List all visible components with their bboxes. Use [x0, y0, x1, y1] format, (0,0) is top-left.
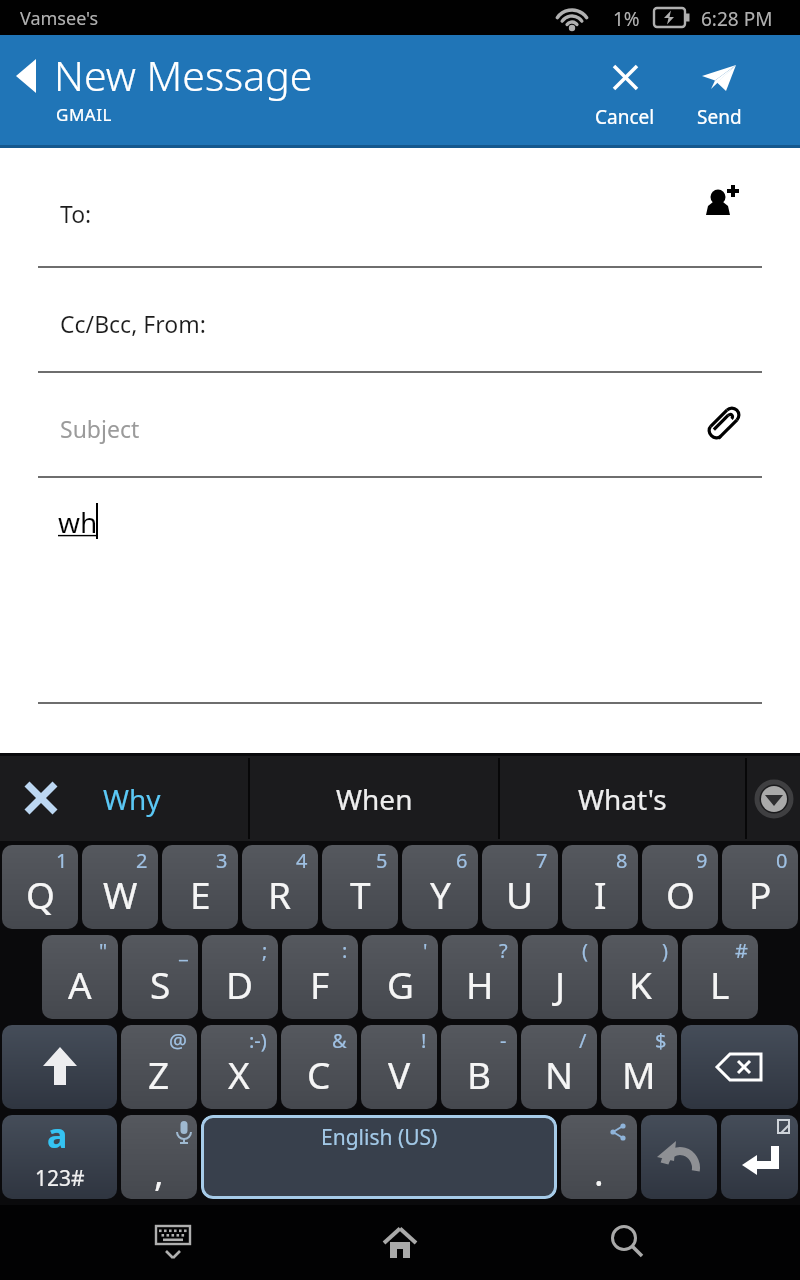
- button[interactable]: G: [362, 935, 438, 1019]
- button[interactable]: [681, 1025, 798, 1109]
- button[interactable]: U: [482, 845, 558, 929]
- staticText: Subject: [60, 413, 140, 444]
- staticText: ": [99, 937, 108, 964]
- button[interactable]: Q: [2, 845, 78, 929]
- button[interactable]: [0, 756, 80, 841]
- button[interactable]: O: [642, 845, 718, 929]
- staticText: ?: [499, 937, 508, 964]
- staticText: T: [350, 869, 371, 919]
- staticText: X: [228, 1049, 250, 1099]
- staticText: Vamsee's: [20, 6, 99, 31]
- staticText: ): [662, 937, 668, 964]
- button[interactable]: Cancel: [592, 55, 658, 135]
- staticText: GMAIL: [56, 103, 112, 126]
- staticText: Cancel: [595, 104, 655, 130]
- button[interactable]: [2, 1025, 117, 1109]
- staticText: @: [169, 1027, 187, 1054]
- staticText: a: [47, 1115, 68, 1158]
- staticText: New Message: [54, 47, 313, 103]
- button[interactable]: P: [722, 845, 798, 929]
- button[interactable]: I: [562, 845, 638, 929]
- staticText: I: [594, 869, 607, 919]
- staticText: wh: [58, 503, 98, 541]
- staticText: 5: [376, 847, 388, 874]
- staticText: 123#: [35, 1164, 85, 1193]
- staticText: P: [749, 869, 772, 919]
- staticText: L: [710, 959, 730, 1009]
- button[interactable]: ,: [121, 1115, 197, 1199]
- staticText: English (US): [321, 1123, 438, 1152]
- button[interactable]: R: [242, 845, 318, 929]
- staticText: G: [387, 959, 414, 1009]
- staticText: Send: [697, 104, 742, 130]
- staticText: W: [103, 869, 138, 919]
- button[interactable]: [747, 756, 800, 841]
- staticText: 2: [136, 847, 148, 874]
- button[interactable]: X: [201, 1025, 277, 1109]
- button[interactable]: W: [82, 845, 158, 929]
- staticText: R: [268, 869, 292, 919]
- button[interactable]: English (US): [201, 1115, 557, 1199]
- staticText: :: [342, 937, 348, 964]
- staticText: _: [179, 937, 188, 964]
- button[interactable]: [704, 406, 740, 444]
- staticText: D: [226, 959, 254, 1009]
- staticText: 0: [776, 847, 788, 874]
- staticText: Y: [430, 869, 451, 919]
- button[interactable]: [721, 1115, 798, 1199]
- staticText: B: [467, 1049, 492, 1099]
- staticText: 6: [456, 847, 468, 874]
- button[interactable]: [641, 1115, 717, 1199]
- staticText: N: [545, 1049, 574, 1099]
- button[interactable]: N: [521, 1025, 597, 1109]
- staticText: $: [655, 1027, 667, 1054]
- staticText: 7: [536, 847, 548, 874]
- button[interactable]: H: [442, 935, 518, 1019]
- staticText: 1%: [613, 6, 640, 32]
- staticText: What's: [578, 780, 667, 818]
- button[interactable]: What's: [500, 756, 745, 841]
- button[interactable]: [135, 1205, 210, 1280]
- button[interactable]: J: [522, 935, 598, 1019]
- staticText: 1: [56, 847, 68, 874]
- staticText: 4: [296, 847, 308, 874]
- staticText: C: [307, 1049, 331, 1099]
- staticText: -: [500, 1027, 507, 1054]
- button[interactable]: When: [250, 756, 498, 841]
- staticText: U: [506, 869, 534, 919]
- button[interactable]: Why: [62, 756, 202, 841]
- button[interactable]: .: [561, 1115, 637, 1199]
- staticText: 6:28 PM: [701, 6, 773, 32]
- button[interactable]: D: [202, 935, 278, 1019]
- button[interactable]: a: [2, 1115, 117, 1199]
- staticText: A: [68, 959, 92, 1009]
- button[interactable]: C: [281, 1025, 357, 1109]
- staticText: ,: [154, 1148, 164, 1197]
- staticText: Why: [103, 780, 161, 818]
- staticText: 9: [696, 847, 708, 874]
- button[interactable]: E: [162, 845, 238, 929]
- button[interactable]: T: [322, 845, 398, 929]
- button[interactable]: M: [601, 1025, 677, 1109]
- staticText: V: [388, 1049, 411, 1099]
- staticText: O: [666, 869, 695, 919]
- staticText: Cc/Bcc, From:: [60, 308, 206, 339]
- staticText: Z: [148, 1049, 170, 1099]
- button[interactable]: [590, 1205, 665, 1280]
- button[interactable]: A: [42, 935, 118, 1019]
- staticText: When: [336, 780, 413, 818]
- button[interactable]: Send: [686, 55, 752, 135]
- button[interactable]: V: [361, 1025, 437, 1109]
- button[interactable]: F: [282, 935, 358, 1019]
- button[interactable]: S: [122, 935, 198, 1019]
- button[interactable]: [362, 1205, 437, 1280]
- button[interactable]: K: [602, 935, 678, 1019]
- button[interactable]: [704, 184, 740, 218]
- button[interactable]: Z: [121, 1025, 197, 1109]
- staticText: 3: [216, 847, 228, 874]
- staticText: H: [466, 959, 494, 1009]
- staticText: F: [310, 959, 330, 1009]
- button[interactable]: Y: [402, 845, 478, 929]
- button[interactable]: L: [682, 935, 758, 1019]
- button[interactable]: B: [441, 1025, 517, 1109]
